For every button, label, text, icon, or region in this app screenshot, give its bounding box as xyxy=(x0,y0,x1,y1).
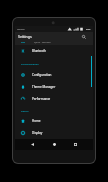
staticText: Settings xyxy=(18,34,32,39)
staticText: Performance xyxy=(32,97,51,101)
button[interactable]: Theme Manager xyxy=(15,81,93,93)
staticText: Verizon xyxy=(17,28,25,31)
button[interactable]: Search xyxy=(80,33,88,41)
button[interactable]: Home xyxy=(15,115,93,127)
staticText: Theme Manager xyxy=(32,85,56,89)
button[interactable]: Configuration xyxy=(15,69,93,81)
button[interactable]: Back xyxy=(28,140,37,149)
staticText: Bluetooth xyxy=(32,49,46,53)
staticText: 4:20 xyxy=(86,28,91,31)
staticText: Display xyxy=(32,131,43,135)
button[interactable]: Performance xyxy=(15,93,93,105)
staticText: Home xyxy=(32,119,41,123)
staticText: Quick Settings xyxy=(34,40,51,43)
button[interactable]: Display xyxy=(15,127,93,139)
button[interactable]: Bluetooth xyxy=(15,45,93,57)
button[interactable]: Recents xyxy=(71,140,80,149)
staticText: Configuration xyxy=(32,73,52,77)
staticText: Personalization xyxy=(21,62,39,65)
staticText: Device xyxy=(21,109,29,112)
button[interactable]: Home xyxy=(50,140,59,149)
staticText: ON xyxy=(21,40,25,43)
